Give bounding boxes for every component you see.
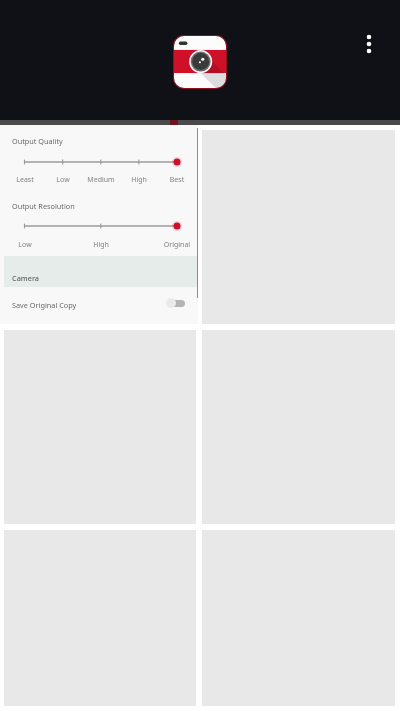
- staticText: Output Quality: [12, 136, 63, 146]
- staticText: Save Original Copy: [12, 300, 77, 310]
- staticText: Output Resolution: [12, 201, 75, 211]
- staticText: High: [114, 175, 164, 185]
- staticText: Best: [152, 175, 202, 185]
- staticText: Least: [0, 175, 50, 185]
- button[interactable]: [0, 218, 198, 228]
- staticText: Medium: [76, 175, 126, 185]
- staticText: High: [76, 240, 126, 250]
- button[interactable]: More options: [352, 27, 386, 61]
- staticText: Low: [0, 240, 50, 250]
- button[interactable]: [4, 130, 196, 324]
- staticText: Original: [152, 240, 202, 250]
- staticText: Camera: [12, 273, 40, 283]
- staticText: Low: [38, 175, 88, 185]
- button[interactable]: Save Original Copy: [0, 288, 198, 322]
- button[interactable]: Camera app icon: [173, 35, 227, 89]
- button[interactable]: [0, 154, 198, 164]
